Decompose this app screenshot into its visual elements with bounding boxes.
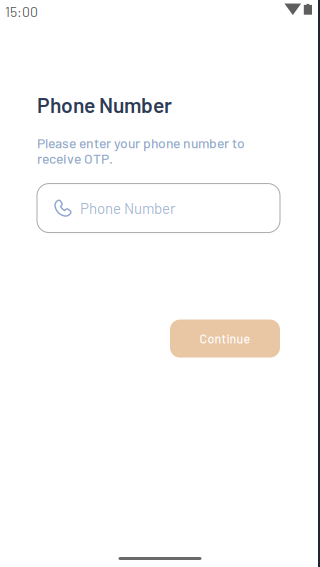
staticText: 15:00: [5, 3, 38, 20]
button[interactable]: Continue: [170, 320, 280, 358]
staticText: Phone Number: [80, 199, 175, 217]
staticText: Please enter your phone number to receiv…: [37, 134, 245, 167]
staticText: Phone Number: [37, 92, 172, 117]
staticText: Continue: [199, 331, 250, 346]
